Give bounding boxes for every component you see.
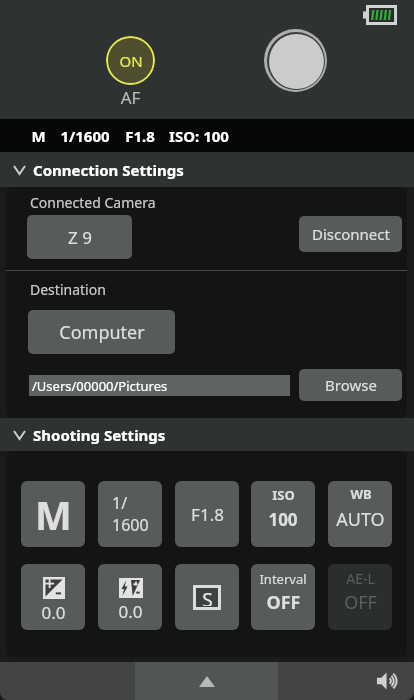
button[interactable]: Disconnect <box>299 216 402 252</box>
staticText: Connected Camera <box>30 193 156 212</box>
staticText: /Users/00000/Pictures <box>32 377 168 395</box>
staticText: M <box>35 488 72 541</box>
button[interactable]: 0.0 <box>21 564 85 630</box>
button[interactable]: F1.8 <box>175 481 239 547</box>
staticText: Interval <box>259 570 307 588</box>
button[interactable]: /Users/00000/Pictures <box>29 375 290 396</box>
staticText: 0.0 <box>118 600 143 623</box>
staticText: F1.8 <box>125 126 155 146</box>
button[interactable]: Interval <box>251 564 315 630</box>
button[interactable]: Volume <box>376 671 400 691</box>
button[interactable]: M <box>21 481 85 547</box>
staticText: Computer <box>59 320 145 345</box>
staticText: AE-L <box>346 569 375 588</box>
staticText: M <box>31 126 46 146</box>
button[interactable]: ON <box>106 36 155 85</box>
staticText: OFF <box>266 590 301 615</box>
staticText: 0.0 <box>41 601 66 624</box>
staticText: ISO: 100 <box>169 126 229 146</box>
staticText: 100 <box>268 508 298 531</box>
button[interactable]: 0.0 <box>98 564 162 630</box>
button[interactable]: ISO <box>251 481 315 547</box>
button[interactable]: WB <box>328 481 392 547</box>
staticText: Disconnect <box>312 224 390 244</box>
staticText: OFF <box>344 590 377 615</box>
staticText: Shooting Settings <box>33 425 166 445</box>
staticText: Z 9 <box>68 226 92 249</box>
staticText: WB <box>350 485 372 503</box>
staticText: 1/ 1600 <box>112 492 149 536</box>
button[interactable]: Connection Settings <box>0 152 414 187</box>
staticText: ON <box>119 51 143 71</box>
staticText: S <box>202 587 213 606</box>
button[interactable]: Browse <box>299 369 402 401</box>
staticText: Browse <box>325 375 377 395</box>
staticText: F1.8 <box>191 503 224 526</box>
button[interactable]: Shutter <box>264 29 327 92</box>
button[interactable]: Expand <box>135 662 278 700</box>
staticText: AUTO <box>336 507 385 532</box>
staticText: Destination <box>30 280 106 299</box>
staticText: ISO <box>272 486 295 504</box>
button[interactable]: 1/ 1600 <box>98 481 162 547</box>
staticText: Connection Settings <box>33 160 184 180</box>
staticText: 1/1600 <box>60 126 110 146</box>
button[interactable]: Computer <box>28 310 175 354</box>
button[interactable]: AE-L <box>328 564 392 630</box>
button[interactable]: Shooting Settings <box>0 418 414 451</box>
staticText: AF <box>106 86 155 109</box>
button[interactable]: Z 9 <box>27 215 132 259</box>
button[interactable]: S <box>175 564 239 630</box>
